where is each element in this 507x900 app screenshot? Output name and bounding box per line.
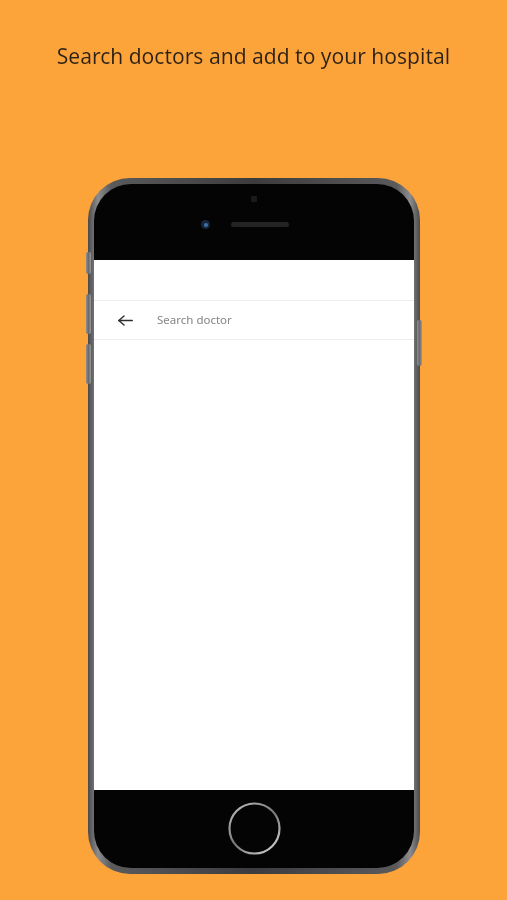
staticText: Search doctor (157, 312, 232, 328)
button[interactable]: Back (94, 301, 414, 339)
staticText: Search doctors and add to your hospital (48, 42, 459, 71)
button[interactable]: Back (112, 307, 138, 333)
